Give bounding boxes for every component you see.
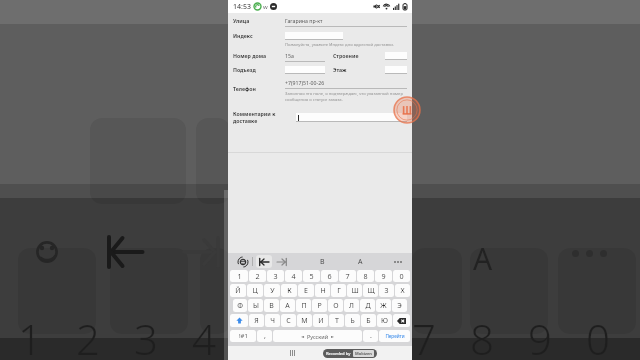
staticText: Пожалуйста, укажите Индекс для адресной … <box>285 42 407 48</box>
button[interactable]: Recents <box>287 347 298 359</box>
button[interactable]: 5 <box>303 270 320 282</box>
staticText: Mobizen <box>355 351 372 356</box>
staticText: Ю <box>381 316 388 326</box>
button[interactable]: Ц <box>247 284 263 297</box>
button[interactable]: Гагарина пр-кт <box>285 17 407 27</box>
button[interactable]: Emoji <box>236 255 249 268</box>
button[interactable]: Я <box>249 314 264 327</box>
button[interactable]: Е <box>298 284 314 297</box>
button[interactable]: 0 <box>393 270 410 282</box>
staticText: Е <box>304 286 308 296</box>
button[interactable]: Щ <box>363 284 378 297</box>
button[interactable]: Р <box>312 299 327 312</box>
button[interactable]: Move cursor to end <box>274 255 290 268</box>
staticText: В <box>320 257 325 267</box>
button[interactable]: Ю <box>377 314 392 327</box>
staticText: Х <box>400 286 405 296</box>
button[interactable]: Move cursor to start <box>256 255 272 268</box>
button[interactable]: Й <box>230 284 246 297</box>
staticText: Гагарина пр-кт <box>285 17 323 24</box>
staticText: Э <box>397 301 402 311</box>
button[interactable]: У <box>264 284 280 297</box>
button[interactable]: Backspace <box>393 314 410 327</box>
button[interactable]: 6 <box>321 270 338 282</box>
staticText: Щ <box>367 286 375 296</box>
button[interactable]: 9 <box>375 270 392 282</box>
button[interactable]: З <box>379 284 394 297</box>
staticText: З <box>384 286 389 296</box>
staticText: ◄ <box>301 334 305 339</box>
button[interactable]: 7 <box>339 270 356 282</box>
button[interactable] <box>285 32 343 40</box>
button[interactable]: Ь <box>345 314 360 327</box>
button[interactable]: 4 <box>285 270 302 282</box>
button[interactable]: Т <box>329 314 344 327</box>
button[interactable]: More options <box>391 255 404 268</box>
staticText: Комментарии к доставке <box>233 110 293 124</box>
button[interactable]: Б <box>361 314 376 327</box>
staticText: 2 <box>255 271 260 281</box>
button[interactable]: П <box>296 299 311 312</box>
staticText: 3 <box>134 310 158 360</box>
button[interactable]: С <box>281 314 296 327</box>
staticText: w <box>263 3 268 11</box>
staticText: A <box>358 257 363 267</box>
staticText: Т <box>335 316 339 326</box>
button[interactable]: , <box>257 330 272 342</box>
staticText: А <box>285 301 290 311</box>
button[interactable]: Ч <box>265 314 280 327</box>
staticText: Ф <box>237 301 243 311</box>
button[interactable]: Д <box>360 299 375 312</box>
button[interactable]: Перейти <box>379 330 410 342</box>
staticText: 4 <box>291 271 296 281</box>
staticText: Н <box>320 286 326 296</box>
staticText: +7(917)51-00-26 <box>285 79 325 86</box>
staticText: 15а <box>285 52 294 59</box>
button[interactable] <box>385 66 407 74</box>
staticText: Б <box>366 316 371 326</box>
button[interactable]: Ф <box>233 299 247 312</box>
staticText: Улица <box>233 17 285 24</box>
button[interactable]: К <box>281 284 297 297</box>
button[interactable]: А <box>280 299 295 312</box>
staticText: 0 <box>586 310 610 360</box>
button[interactable]: 1 <box>230 270 248 282</box>
button[interactable]: Л <box>344 299 359 312</box>
staticText: Этаж <box>333 66 365 73</box>
staticText: 7 <box>412 310 436 360</box>
button[interactable]: Ш <box>347 284 362 297</box>
button[interactable]: ◄ <box>273 330 362 342</box>
staticText: Й <box>235 286 241 296</box>
staticText: И <box>318 316 324 326</box>
button[interactable]: Ж <box>376 299 391 312</box>
button[interactable]: И <box>313 314 328 327</box>
staticText: Р <box>317 301 322 311</box>
button[interactable]: О <box>328 299 343 312</box>
staticText: Л <box>349 301 354 311</box>
button[interactable]: 3 <box>267 270 284 282</box>
button[interactable] <box>285 66 325 74</box>
button[interactable]: Х <box>395 284 410 297</box>
button[interactable]: !#1 <box>230 330 256 342</box>
staticText: Подъезд <box>233 66 285 73</box>
button[interactable]: Text style <box>353 255 367 268</box>
button[interactable]: 2 <box>249 270 266 282</box>
staticText: сообщения о статусе заказа. <box>285 97 343 103</box>
button[interactable]: Г <box>331 284 346 297</box>
button[interactable]: В <box>264 299 279 312</box>
staticText: 7 <box>345 271 350 281</box>
staticText: 9 <box>528 310 552 360</box>
button[interactable]: Э <box>392 299 407 312</box>
button[interactable] <box>385 52 407 60</box>
button[interactable]: Shift <box>230 314 248 327</box>
button[interactable]: Н <box>315 284 330 297</box>
button[interactable]: 15а <box>285 52 325 62</box>
staticText: 6 <box>327 271 332 281</box>
button[interactable]: . <box>363 330 378 342</box>
button[interactable]: Ы <box>248 299 263 312</box>
button[interactable] <box>296 113 407 122</box>
button[interactable]: 8 <box>357 270 374 282</box>
button[interactable]: М <box>297 314 312 327</box>
staticText: ► <box>331 334 335 339</box>
button[interactable]: Bold <box>315 255 329 268</box>
